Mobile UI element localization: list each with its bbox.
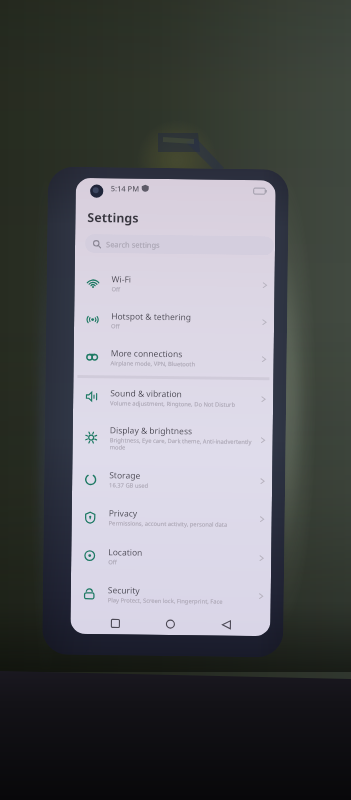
- staticText: Off: [108, 558, 117, 566]
- staticText: Sound & vibration: [110, 387, 182, 400]
- button[interactable]: Back: [215, 615, 237, 635]
- staticText: Wi-Fi: [111, 273, 132, 285]
- staticText: More connections: [111, 347, 183, 360]
- staticText: Location: [108, 546, 143, 559]
- staticText: Play Protect, Screen lock, Fingerprint, …: [108, 596, 223, 606]
- button[interactable]: Wi-Fi: [74, 264, 275, 303]
- staticText: Permissions, account activity, personal …: [109, 519, 228, 529]
- button[interactable]: Security: [71, 575, 271, 614]
- button[interactable]: Display & brightness: [72, 415, 273, 462]
- staticText: 16.37 GB used: [109, 481, 149, 490]
- staticText: Off: [111, 322, 120, 330]
- staticText: Privacy: [109, 507, 138, 520]
- button[interactable]: Sound & vibration: [73, 378, 273, 417]
- staticText: Volume adjustment, Ringtone, Do Not Dist…: [110, 399, 235, 409]
- button[interactable]: More connections: [73, 338, 274, 377]
- button[interactable]: Home: [159, 614, 181, 634]
- button[interactable]: Storage: [72, 460, 272, 500]
- staticText: Security: [108, 584, 140, 597]
- staticText: Off: [111, 285, 120, 293]
- staticText: Hotspot & tethering: [111, 310, 191, 323]
- staticText: Brightness, Eye care, Dark theme, Anti-i…: [109, 436, 261, 453]
- button[interactable]: Search settings: [85, 234, 274, 255]
- staticText: 5:14 PM: [111, 183, 140, 194]
- staticText: Storage: [109, 469, 141, 482]
- button[interactable]: Recent apps: [104, 613, 126, 634]
- button[interactable]: Privacy: [71, 498, 272, 538]
- button[interactable]: Location: [71, 536, 271, 577]
- button[interactable]: Hotspot & tethering: [74, 301, 274, 340]
- staticText: Airplane mode, VPN, Bluetooth: [110, 359, 196, 368]
- staticText: Display & brightness: [110, 424, 193, 437]
- staticText: Search settings: [106, 239, 160, 250]
- staticText: Settings: [87, 209, 139, 227]
